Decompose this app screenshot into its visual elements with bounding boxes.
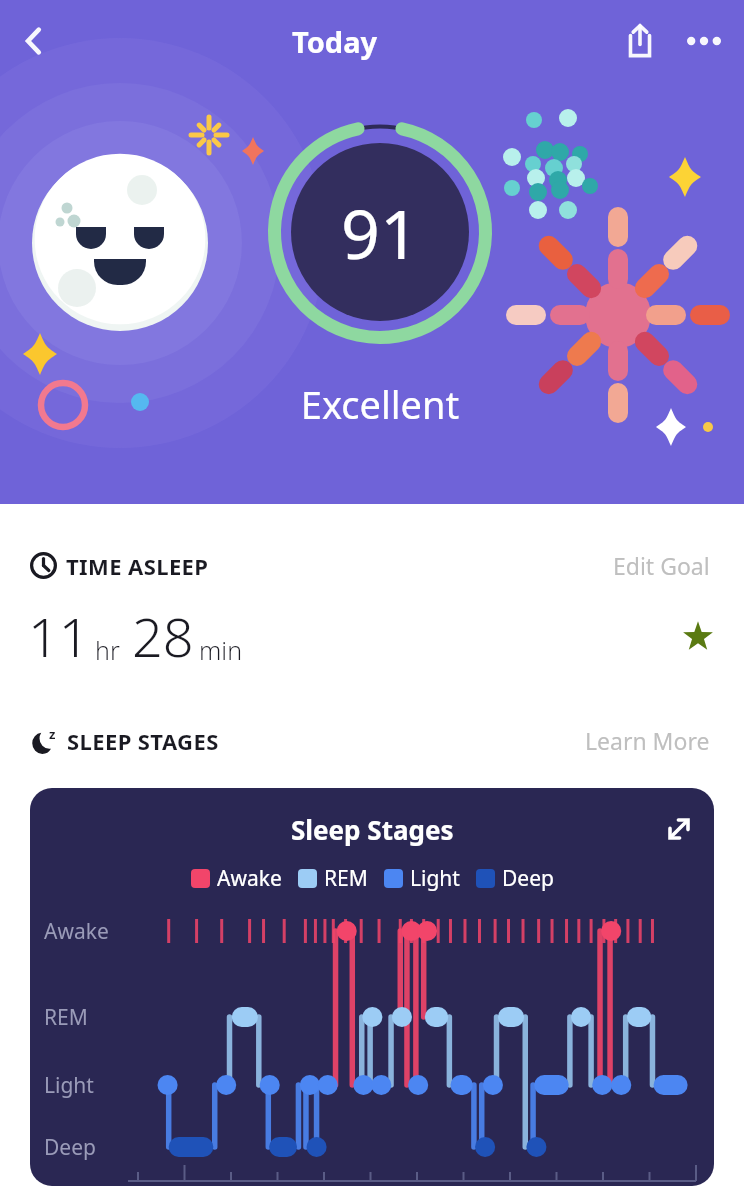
- staticText: Sleep Stages: [291, 812, 454, 847]
- staticText: hr: [95, 633, 120, 667]
- button[interactable]: Sleep Stages: [30, 788, 714, 1186]
- staticText: Light: [410, 864, 460, 893]
- staticText: Light: [44, 1071, 94, 1100]
- staticText: TIME ASLEEP: [66, 551, 209, 581]
- button[interactable]: Edit Goal: [609, 546, 714, 585]
- staticText: Awake: [44, 917, 109, 946]
- button[interactable]: 91: [268, 120, 492, 344]
- button[interactable]: Share: [608, 9, 672, 73]
- staticText: Deep: [44, 1133, 96, 1162]
- staticText: 11: [28, 599, 90, 673]
- button[interactable]: Expand chart: [656, 806, 702, 852]
- button[interactable]: Learn More: [581, 721, 714, 760]
- staticText: Deep: [502, 864, 554, 893]
- staticText: 91: [341, 186, 419, 279]
- staticText: SLEEP STAGES: [67, 726, 219, 756]
- staticText: REM: [44, 1003, 88, 1032]
- staticText: Awake: [217, 864, 282, 893]
- button[interactable]: Back: [6, 13, 62, 69]
- button[interactable]: More options: [672, 9, 736, 73]
- staticText: 28: [132, 599, 194, 673]
- staticText: Edit Goal: [613, 550, 710, 581]
- staticText: Learn More: [585, 725, 710, 756]
- staticText: Excellent: [268, 378, 492, 430]
- staticText: min: [199, 633, 243, 667]
- staticText: Today: [292, 22, 378, 61]
- staticText: z: [49, 725, 56, 743]
- staticText: REM: [324, 864, 368, 893]
